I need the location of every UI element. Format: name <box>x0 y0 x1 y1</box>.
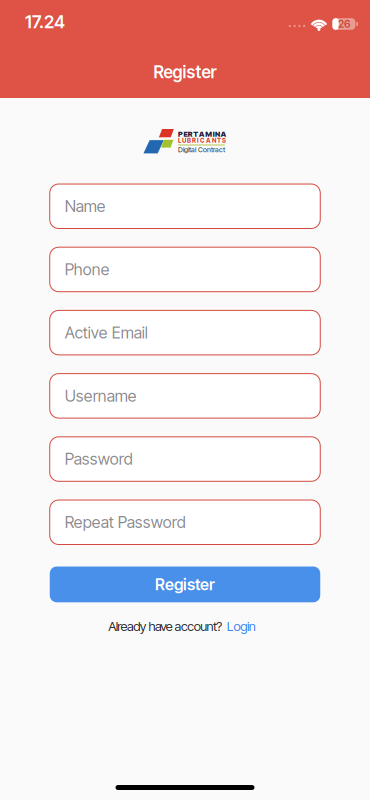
button[interactable]: Password <box>50 437 320 481</box>
staticText: Login <box>227 618 256 634</box>
button[interactable]: Phone <box>50 247 320 292</box>
staticText: 26 <box>338 18 350 30</box>
staticText: C <box>200 137 205 144</box>
staticText: Already have account? <box>108 618 222 634</box>
staticText: A <box>206 137 211 144</box>
button[interactable]: Register <box>50 566 320 602</box>
button[interactable]: Repeat Password <box>50 500 320 544</box>
staticText: S <box>222 137 226 144</box>
staticText: 17.24 <box>25 11 65 33</box>
staticText: Register <box>153 62 216 82</box>
staticText: T <box>217 137 221 144</box>
staticText: P <box>178 129 183 138</box>
staticText: A <box>199 129 205 138</box>
button[interactable]: Login <box>227 618 256 634</box>
staticText: Password <box>65 449 133 469</box>
staticText: L <box>178 137 181 144</box>
staticText: N <box>215 129 220 138</box>
staticText: B <box>187 137 191 144</box>
staticText: Phone <box>65 260 110 279</box>
staticText: Digital Contract <box>178 146 225 154</box>
staticText: Register <box>155 575 215 594</box>
staticText: R <box>188 129 193 138</box>
staticText: I <box>197 137 199 144</box>
staticText: A <box>221 129 227 138</box>
staticText: Name <box>65 197 106 216</box>
staticText: Repeat Password <box>65 513 186 532</box>
staticText: N <box>212 137 216 144</box>
staticText: Active Email <box>65 323 148 342</box>
staticText: E <box>183 129 187 138</box>
button[interactable]: Active Email <box>50 310 320 355</box>
staticText: R <box>192 137 196 144</box>
staticText: U <box>182 137 186 144</box>
button[interactable]: Name <box>50 184 320 228</box>
staticText: I <box>213 129 215 138</box>
staticText: T <box>193 129 198 138</box>
button[interactable]: Username <box>50 374 320 418</box>
staticText: M <box>205 129 212 138</box>
staticText: Username <box>65 386 137 406</box>
